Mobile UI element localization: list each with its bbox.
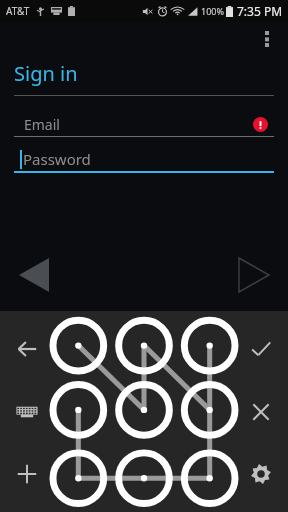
button[interactable]: Clear [237, 388, 285, 436]
button[interactable]: Keyboard [3, 388, 51, 436]
button[interactable]: Email [14, 112, 274, 137]
button[interactable]: Previous [10, 251, 58, 299]
staticText: 7:35 PM [237, 3, 283, 19]
button[interactable]: Confirm [237, 325, 285, 373]
staticText: Email [24, 115, 60, 134]
button[interactable]: Settings [237, 450, 285, 498]
staticText: Password [23, 149, 91, 169]
button[interactable]: More options [252, 24, 282, 54]
button[interactable]: Add [3, 450, 51, 498]
staticText: AT&T [6, 4, 30, 18]
button[interactable]: Next [230, 251, 278, 299]
staticText: Sign in [14, 60, 78, 87]
staticText: 100% [201, 5, 224, 17]
button[interactable]: Back [3, 325, 51, 373]
button[interactable]: Password [14, 147, 274, 173]
